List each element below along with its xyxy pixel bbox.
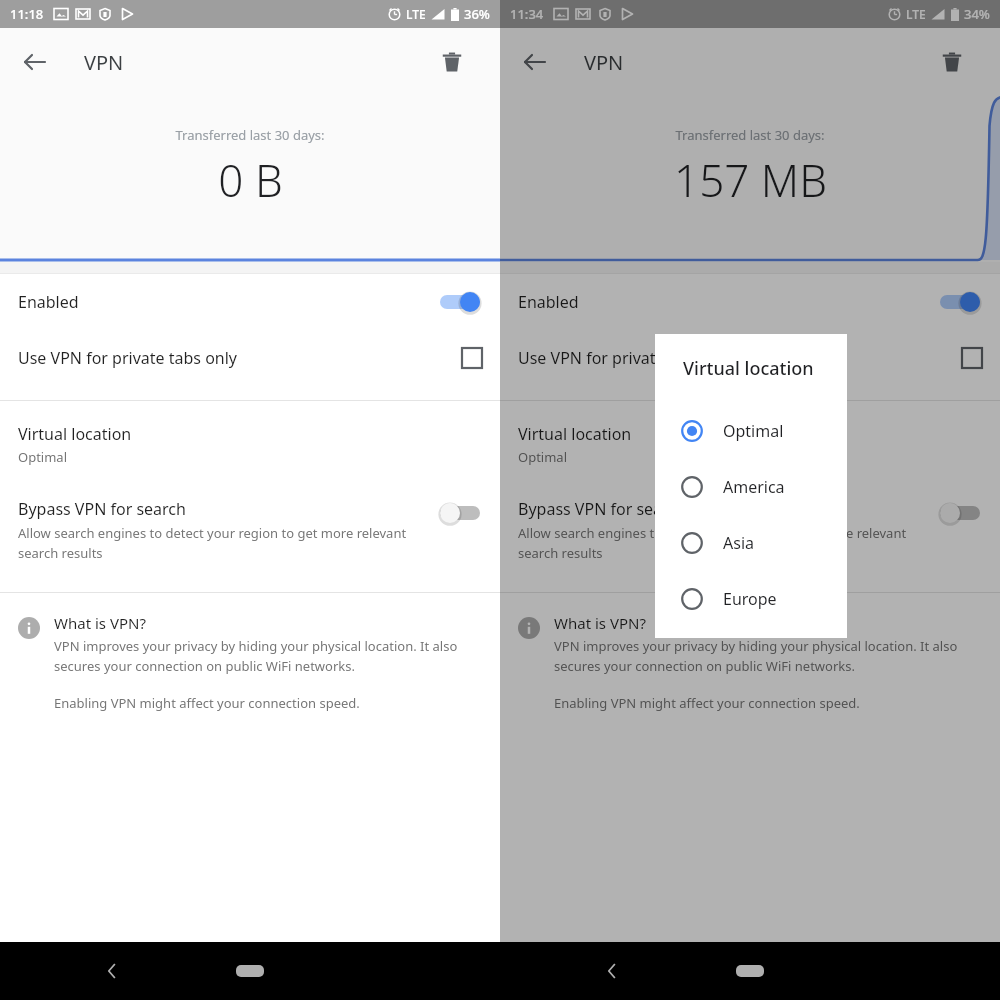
- staticText: Europe: [723, 588, 777, 610]
- button[interactable]: Home: [726, 958, 774, 984]
- staticText: Virtual location: [18, 423, 132, 445]
- staticText: VPN: [84, 49, 124, 76]
- button[interactable]: America: [655, 459, 847, 515]
- button[interactable]: Toggle on: [438, 289, 482, 315]
- staticText: Use VPN for private tabs only: [518, 347, 738, 369]
- staticText: Enabled: [18, 291, 79, 313]
- button[interactable]: Bypass VPN for search: [500, 480, 1000, 578]
- staticText: What is VPN?: [554, 613, 646, 633]
- staticText: 157 MB: [674, 150, 827, 210]
- staticText: Bypass VPN for search: [18, 498, 186, 520]
- button[interactable]: Delete: [930, 40, 974, 84]
- staticText: Optimal: [518, 448, 567, 466]
- staticText: 11:18: [10, 5, 44, 23]
- staticText: America: [723, 476, 785, 498]
- staticText: 34%: [964, 5, 990, 23]
- button[interactable]: Enabled: [0, 274, 500, 330]
- staticText: Transferred last 30 days:: [675, 126, 825, 144]
- staticText: VPN improves your privacy by hiding your…: [54, 637, 478, 675]
- button[interactable]: Virtual location: [0, 401, 500, 480]
- button[interactable]: Home: [226, 958, 274, 984]
- button[interactable]: Europe: [655, 571, 847, 627]
- staticText: LTE: [906, 6, 926, 22]
- button[interactable]: Toggle off: [438, 500, 482, 526]
- button[interactable]: Delete: [430, 40, 474, 84]
- button[interactable]: Optimal: [655, 403, 847, 459]
- button[interactable]: Toggle on: [938, 289, 982, 315]
- staticText: LTE: [406, 6, 426, 22]
- staticText: 11:34: [510, 5, 544, 23]
- staticText: Use VPN for private tabs only: [18, 347, 238, 369]
- button[interactable]: Use VPN for private tabs only: [500, 330, 1000, 386]
- staticText: What is VPN?: [54, 613, 146, 633]
- staticText: Enabling VPN might affect your connectio…: [554, 694, 860, 712]
- button[interactable]: Back: [14, 41, 56, 83]
- button[interactable]: Virtual location: [500, 401, 1000, 480]
- staticText: Optimal: [723, 420, 784, 442]
- button[interactable]: Back: [514, 41, 556, 83]
- button[interactable]: Bypass VPN for search: [0, 480, 500, 578]
- staticText: Allow search engines to detect your regi…: [518, 524, 922, 562]
- staticText: Virtual location: [683, 356, 814, 381]
- button[interactable]: Back: [90, 949, 134, 993]
- staticText: Enabling VPN might affect your connectio…: [54, 694, 360, 712]
- staticText: VPN: [584, 49, 624, 76]
- button[interactable]: Toggle off: [938, 500, 982, 526]
- button[interactable]: Back: [590, 949, 634, 993]
- staticText: 0 B: [218, 150, 283, 210]
- button[interactable]: Enabled: [500, 274, 1000, 330]
- staticText: Virtual location: [518, 423, 632, 445]
- staticText: Optimal: [18, 448, 67, 466]
- staticText: VPN improves your privacy by hiding your…: [554, 637, 978, 675]
- staticText: Bypass VPN for search: [518, 498, 686, 520]
- staticText: 36%: [464, 5, 490, 23]
- staticText: Enabled: [518, 291, 579, 313]
- staticText: Transferred last 30 days:: [175, 126, 325, 144]
- staticText: Asia: [723, 532, 754, 554]
- button[interactable]: Use VPN for private tabs only: [0, 330, 500, 386]
- staticText: Allow search engines to detect your regi…: [18, 524, 422, 562]
- button[interactable]: Asia: [655, 515, 847, 571]
